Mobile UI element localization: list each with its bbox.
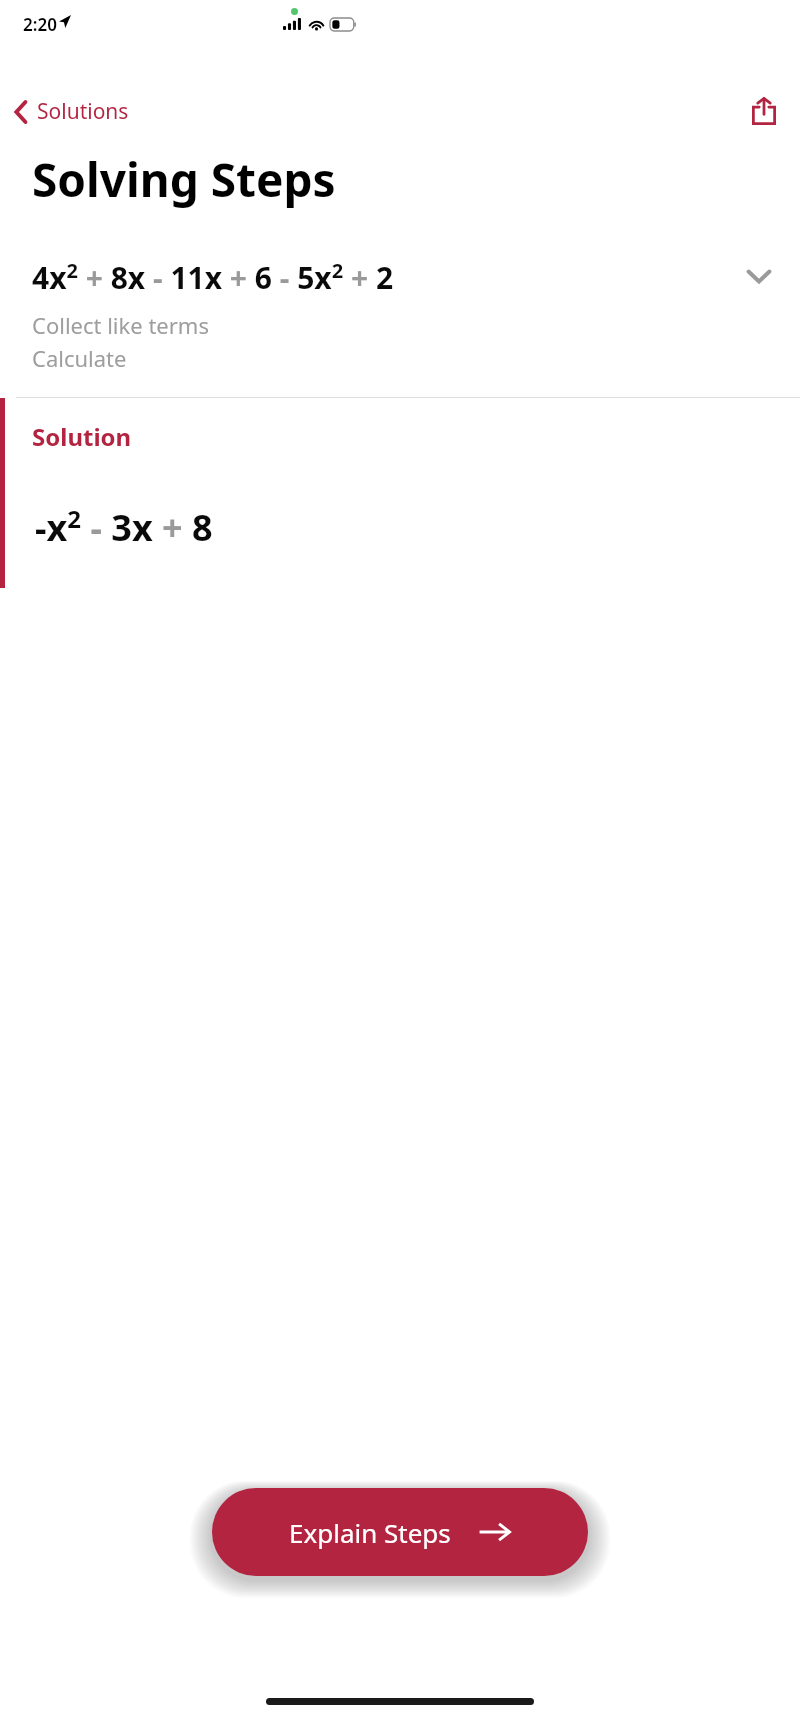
staticText: Explain Steps [289,1515,451,1550]
button[interactable]: Expand step [740,263,778,290]
staticText: Calculate [32,343,127,373]
button[interactable]: Share [744,89,784,133]
staticText: Solving Steps [32,148,336,211]
button[interactable]: Solutions [6,91,141,132]
button[interactable]: Explain Steps [212,1488,588,1576]
staticText: Collect like terms [32,310,209,340]
staticText: 4x2 + 8x - 11x + 6 - 5x2 + 2 [32,257,394,298]
staticText: 2:20 [23,13,57,36]
staticText: Solution [32,420,132,453]
staticText: Solutions [37,97,129,126]
staticText: -x2 - 3x + 8 [35,502,213,552]
button[interactable]: 4x2 + 8x - 11x + 6 - 5x2 + 2 [0,257,800,373]
